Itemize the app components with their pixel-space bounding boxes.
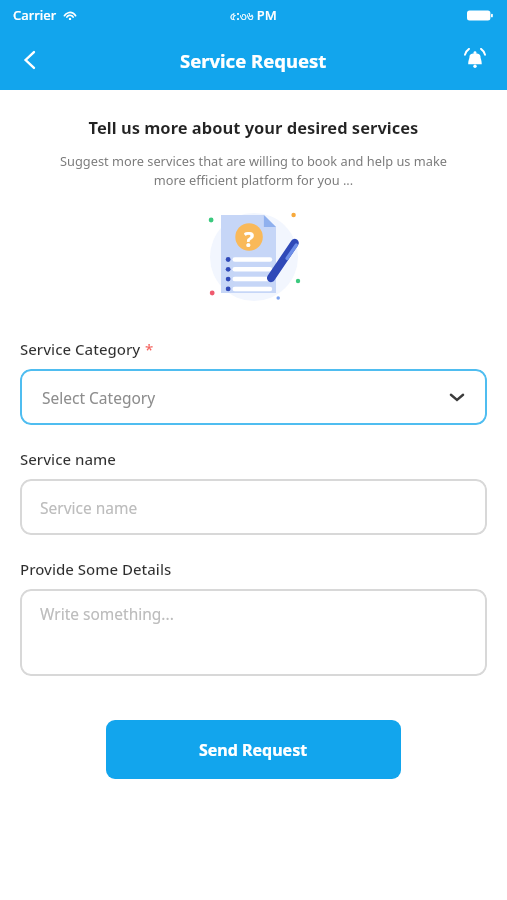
staticText: Service name	[40, 497, 138, 518]
staticText: Service Request	[180, 48, 327, 73]
staticText: Service name	[20, 449, 116, 469]
staticText: Tell us more about your desired services	[0, 116, 507, 138]
button[interactable]: Select Category	[20, 369, 487, 425]
button[interactable]: Service name	[20, 479, 487, 535]
button[interactable]: Back	[8, 38, 52, 82]
staticText: ?	[244, 225, 255, 254]
staticText: Select Category	[42, 387, 156, 408]
staticText: *	[145, 339, 154, 359]
staticText: Send Request	[199, 739, 308, 761]
button[interactable]: Notifications	[453, 38, 497, 82]
staticText: Provide Some Details	[20, 559, 172, 579]
button[interactable]: Write something...	[20, 589, 487, 676]
staticText: Service Category	[20, 339, 141, 359]
staticText: Suggest more services that are willing t…	[22, 152, 485, 189]
staticText: ৫:৩৬ PM	[230, 6, 277, 24]
button[interactable]: Send Request	[106, 720, 401, 779]
staticText: Carrier	[13, 6, 57, 24]
staticText: Write something...	[40, 603, 174, 624]
